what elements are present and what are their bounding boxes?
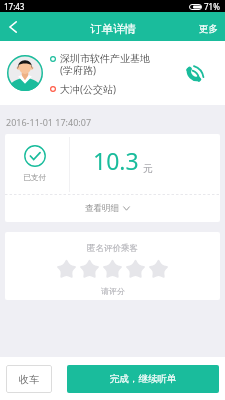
staticText: 已支付 [23,172,47,182]
staticText: 大冲(公交站) [60,82,116,96]
staticText: 完成，继续听单 [110,373,177,385]
button[interactable]: Rate star [101,257,124,281]
staticText: 元 [143,162,153,175]
button[interactable]: Rate star [55,257,78,281]
button[interactable]: 查看明细 [5,195,220,222]
staticText: 更多 [199,23,218,35]
button[interactable]: Rate star [78,257,101,281]
button[interactable]: Rate star [124,257,147,281]
staticText: 请评分 [101,286,125,296]
button[interactable]: 更多 [199,12,218,41]
staticText: 17:43 [4,1,25,12]
button[interactable]: Back [0,14,26,40]
staticText: 71% [204,1,220,12]
button[interactable]: 收车 [6,365,52,393]
button[interactable]: Call [180,58,210,88]
staticText: 10.3 [93,145,139,176]
staticText: 匿名评价乘客 [87,243,138,254]
button[interactable]: Rate star [147,257,170,281]
button[interactable]: 完成，继续听单 [67,365,219,393]
staticText: 2016-11-01 17:40:07 [6,116,92,128]
staticText: 查看明细 [85,203,119,214]
staticText: 订单详情 [90,22,136,36]
staticText: 收车 [19,373,39,386]
staticText: 深圳市软件产业基地 (学府路) [60,52,150,77]
